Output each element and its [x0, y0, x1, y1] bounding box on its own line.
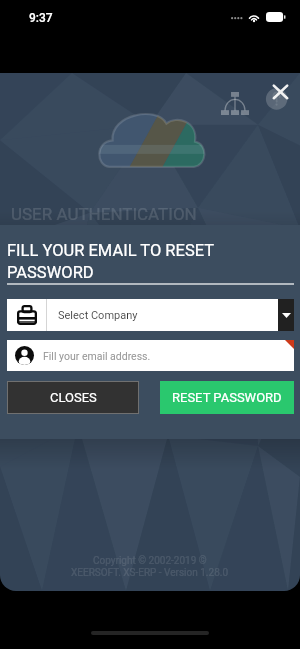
- staticText: CLOSES: [50, 390, 97, 405]
- button[interactable]: Fill your email address.: [7, 340, 294, 371]
- button[interactable]: RESET PASSWORD: [160, 381, 294, 414]
- button[interactable]: Select Company: [7, 299, 294, 331]
- staticText: 9:37: [29, 11, 53, 25]
- staticText: XEERSOFT. XS-ERP - Version 1.28.0: [71, 567, 229, 579]
- staticText: Copyright © 2002-2019 ©: [93, 555, 207, 567]
- button[interactable]: Close: [265, 83, 289, 109]
- button[interactable]: CLOSES: [7, 381, 139, 414]
- staticText: FILL YOUR EMAIL TO RESET PASSWORD: [7, 241, 294, 282]
- button[interactable]: Organization hierarchy: [221, 92, 249, 115]
- staticText: USER AUTHENTICATION: [11, 204, 197, 224]
- staticText: Fill your email address.: [43, 350, 151, 362]
- staticText: RESET PASSWORD: [172, 390, 282, 405]
- staticText: Select Company: [58, 309, 138, 322]
